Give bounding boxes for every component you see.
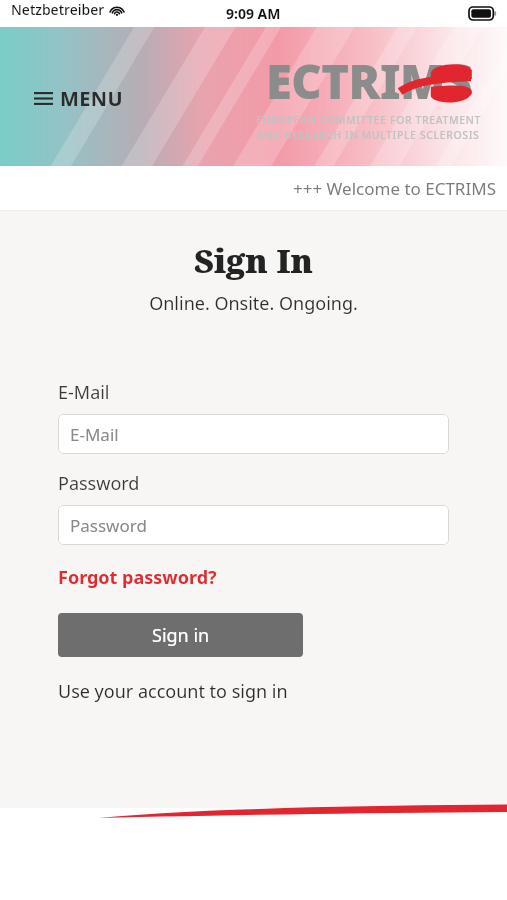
staticText: Password [70, 514, 147, 537]
staticText: Online. Onsite. Ongoing. [0, 291, 507, 316]
button[interactable]: Menu [32, 79, 126, 118]
staticText: EUROPEAN COMMITTEE FOR TREATMENT [256, 113, 481, 127]
staticText: Sign in [152, 623, 210, 648]
staticText: MENU [60, 85, 124, 112]
staticText: Netzbetreiber [11, 0, 105, 19]
staticText: AND RESEARCH IN MULTIPLE SCLEROSIS [257, 128, 480, 142]
staticText: Password [58, 471, 140, 496]
button[interactable]: Password [58, 505, 449, 545]
staticText: E-Mail [58, 380, 110, 405]
staticText: +++ Welcome to ECTRIMS 2022 +++ [293, 177, 507, 200]
staticText: E-Mail [70, 423, 119, 446]
staticText: Forgot password? [58, 565, 217, 590]
staticText: Use your account to sign in [58, 679, 288, 704]
button[interactable]: +++ Welcome to ECTRIMS 2022 +++ [0, 166, 507, 210]
staticText: ECTRIMS [266, 49, 472, 113]
staticText: 9:09 AM [226, 4, 281, 23]
button[interactable]: E-Mail [58, 414, 449, 454]
button[interactable]: Forgot password? [58, 565, 217, 590]
staticText: Sign In [0, 238, 507, 283]
button[interactable]: Sign in [58, 613, 303, 657]
